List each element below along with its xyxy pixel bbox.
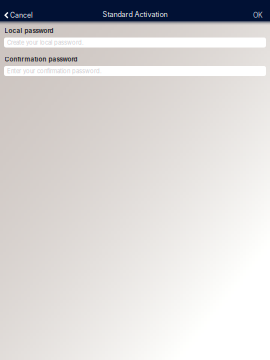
button[interactable]: Enter your confirmation password.	[4, 66, 266, 76]
button[interactable]: OK	[247, 10, 270, 20]
staticText: Confirmation password	[5, 55, 78, 63]
staticText: Standard Activation	[102, 10, 167, 19]
staticText: OK	[253, 11, 263, 19]
button[interactable]: Create your local password.	[4, 37, 266, 47]
button[interactable]: Cancel	[0, 10, 39, 20]
staticText: Enter your confirmation password.	[7, 67, 102, 75]
staticText: Create your local password.	[7, 39, 84, 46]
staticText: Cancel	[10, 11, 33, 19]
staticText: Local password	[5, 27, 54, 35]
